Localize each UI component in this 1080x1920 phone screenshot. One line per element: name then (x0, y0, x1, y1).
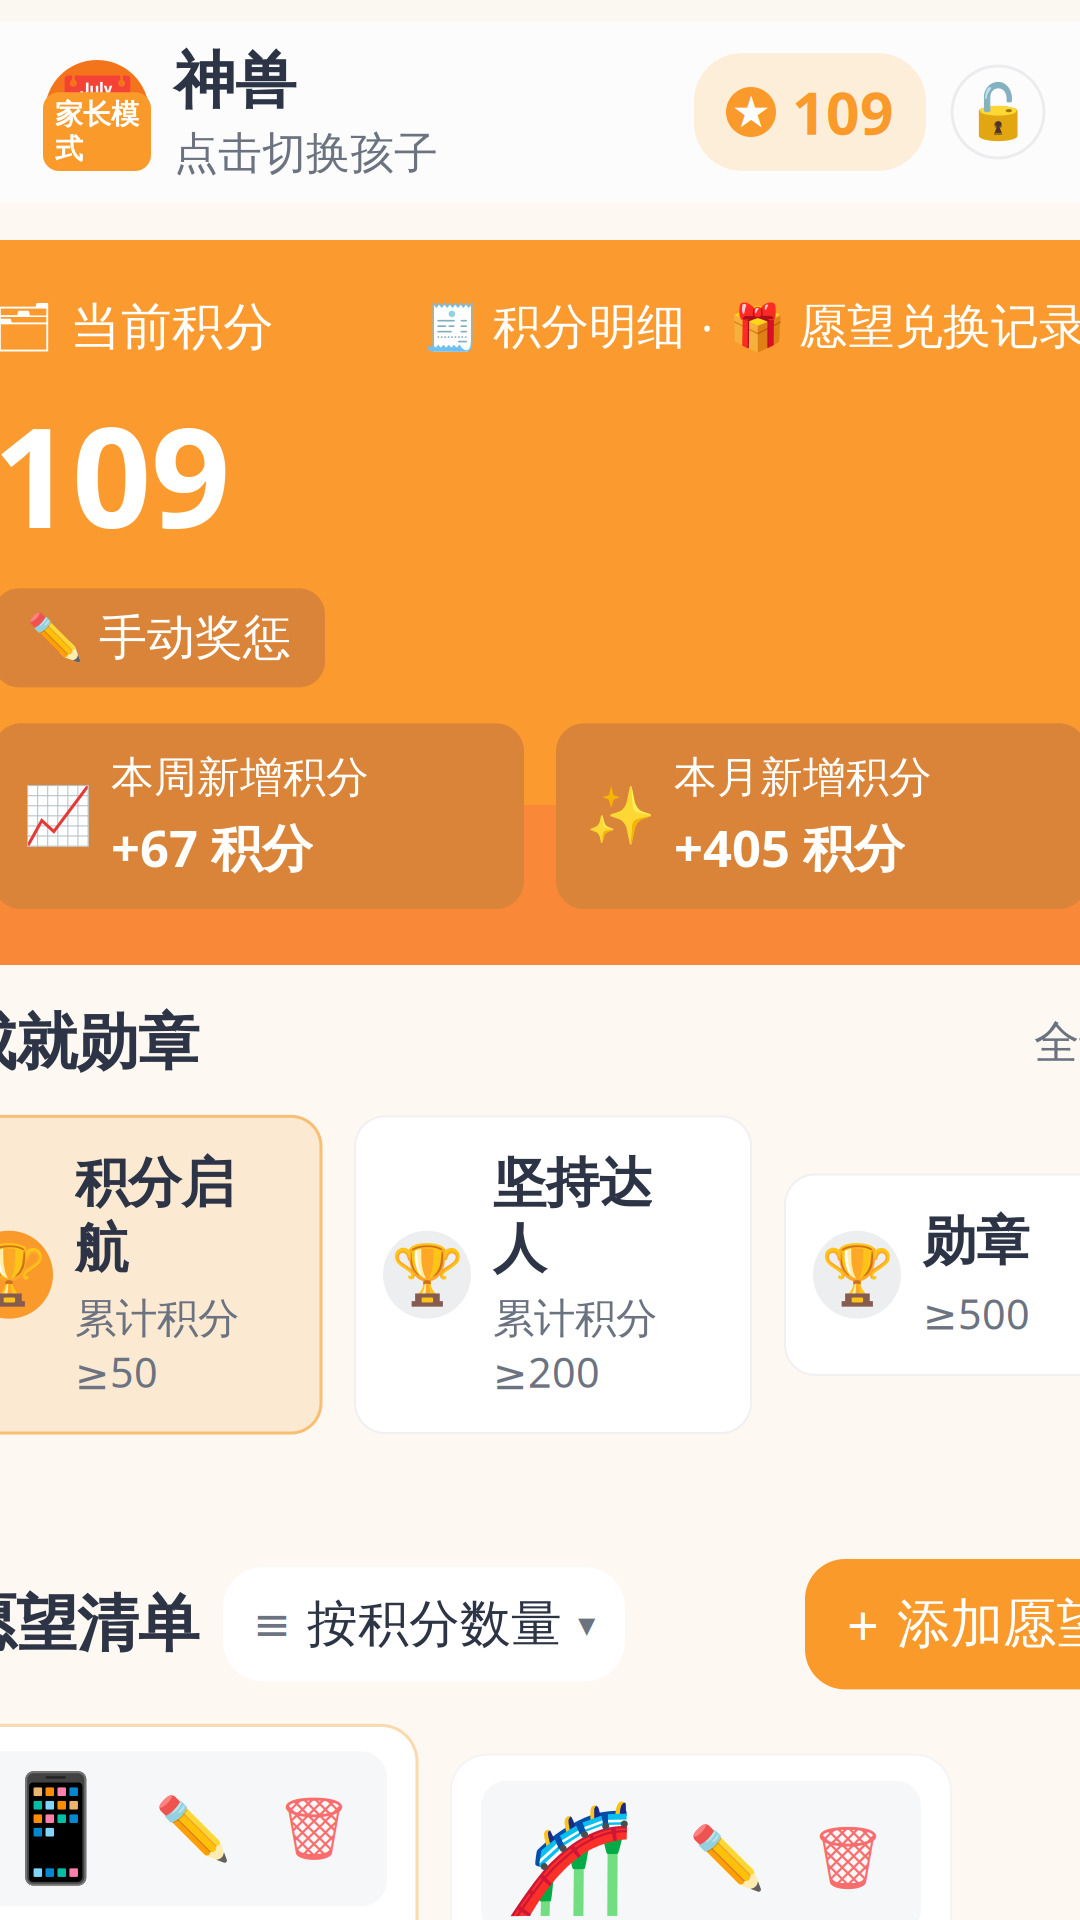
staticText: 成就勋章 (0, 1005, 199, 1080)
button[interactable]: 编辑 (689, 1823, 765, 1893)
staticText: ✨ (586, 784, 656, 848)
button[interactable]: 🧾 (423, 298, 685, 357)
staticText: ▾ (578, 1604, 595, 1644)
staticText: 累计积分≥50 (75, 1293, 239, 1399)
staticText: 愿望清单 (0, 1586, 199, 1662)
staticText: 🏆 (390, 1241, 463, 1308)
staticText: 积分启航 (75, 1150, 234, 1281)
button[interactable]: 编辑 (155, 1794, 231, 1864)
button[interactable]: 🎁 (729, 298, 1080, 357)
button[interactable]: ≡ (223, 1567, 625, 1681)
staticText: 🗑 (275, 1794, 353, 1864)
staticText: 家长模式 (55, 97, 139, 166)
staticText: ★ (731, 87, 770, 137)
staticText: 点击切换孩子 (174, 127, 438, 181)
staticText: 手动奖惩 (99, 608, 291, 667)
staticText: 愿望兑换记录 (799, 298, 1080, 357)
button[interactable]: 🏆 (785, 1174, 1080, 1375)
button[interactable]: 🏆 (0, 1116, 321, 1433)
button[interactable]: 删除 (809, 1823, 887, 1893)
staticText: +405 积分 (674, 814, 905, 881)
button[interactable]: ★ (694, 53, 926, 171)
staticText: 全部 (1034, 1015, 1080, 1071)
staticText: 按积分数量 (307, 1593, 562, 1655)
staticText: 109 (0, 382, 230, 566)
staticText: 积分明细 (493, 298, 685, 357)
button[interactable]: ✏️ (0, 588, 325, 687)
staticText: 🎁 (729, 301, 785, 353)
staticText: ✏️ (27, 612, 83, 664)
staticText: 🔓 (965, 81, 1031, 142)
button[interactable]: 删除 (275, 1794, 353, 1864)
button[interactable]: 全部 (1034, 1007, 1080, 1078)
staticText: 勋章 (923, 1208, 1029, 1274)
button[interactable]: ✨ (556, 723, 1080, 909)
staticText: 当前积分 (70, 296, 274, 358)
button[interactable]: 📅 (0, 43, 438, 181)
staticText: 🎢 (505, 1799, 634, 1917)
staticText: 🗑 (809, 1823, 887, 1893)
staticText: ✏️ (689, 1823, 765, 1893)
staticText: 累计积分≥200 (493, 1293, 657, 1399)
staticText: 📅 (55, 74, 138, 150)
staticText: 📱 (0, 1769, 120, 1888)
staticText: 🧾 (423, 301, 479, 353)
staticText: 📈 (23, 784, 93, 848)
staticText: + (847, 1587, 879, 1661)
staticText: 🏆 (0, 1241, 45, 1308)
staticText: +67 积分 (111, 814, 313, 881)
button[interactable]: 🏆 (355, 1116, 751, 1433)
staticText: ≡ (253, 1598, 291, 1650)
staticText: 🏆 (820, 1241, 893, 1308)
staticText: 🗂 (0, 300, 54, 354)
staticText: ≥500 (923, 1286, 1030, 1341)
button[interactable]: 📈 (0, 723, 524, 909)
staticText: 坚持达人 (493, 1150, 652, 1281)
staticText: · (701, 297, 713, 357)
staticText: 神兽 (174, 43, 296, 119)
staticText: 本月新增积分 (674, 751, 932, 804)
staticText: ✏️ (155, 1794, 231, 1864)
staticText: 添加愿望 (897, 1591, 1080, 1657)
staticText: 109 (792, 73, 894, 151)
button[interactable]: 解锁 (952, 66, 1044, 158)
staticText: 本周新增积分 (111, 751, 369, 804)
button[interactable]: + (805, 1559, 1080, 1689)
